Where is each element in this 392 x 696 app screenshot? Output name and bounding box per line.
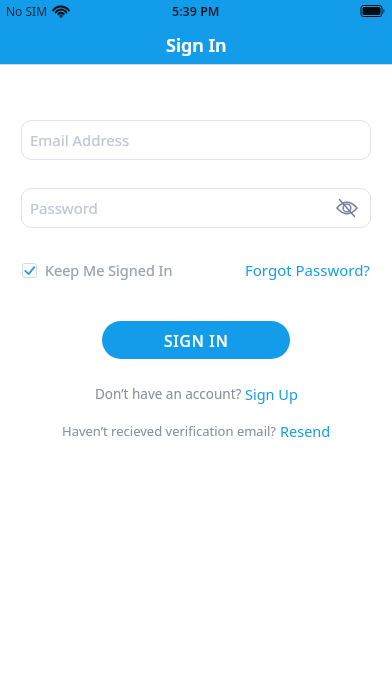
staticText: Password [30, 198, 98, 218]
button[interactable]: Email Address [21, 120, 371, 160]
button[interactable]: Sign Up [245, 384, 298, 404]
staticText: Sign In [166, 33, 227, 58]
button[interactable]: SIGN IN [102, 321, 290, 359]
staticText: SIGN IN [164, 330, 229, 351]
button[interactable]: Resend [280, 421, 331, 441]
staticText: No SIM [6, 3, 48, 19]
staticText: Keep Me Signed In [45, 260, 173, 280]
button[interactable]: Password [21, 188, 371, 228]
staticText: Email Address [30, 130, 130, 150]
button[interactable]: Keep Me Signed In [22, 260, 173, 280]
staticText: 5:39 PM [172, 3, 220, 20]
button[interactable]: Forgot Password? [245, 260, 370, 280]
staticText: Haven’t recieved verification email? [62, 422, 280, 440]
staticText: Don’t have an account? [95, 385, 245, 403]
